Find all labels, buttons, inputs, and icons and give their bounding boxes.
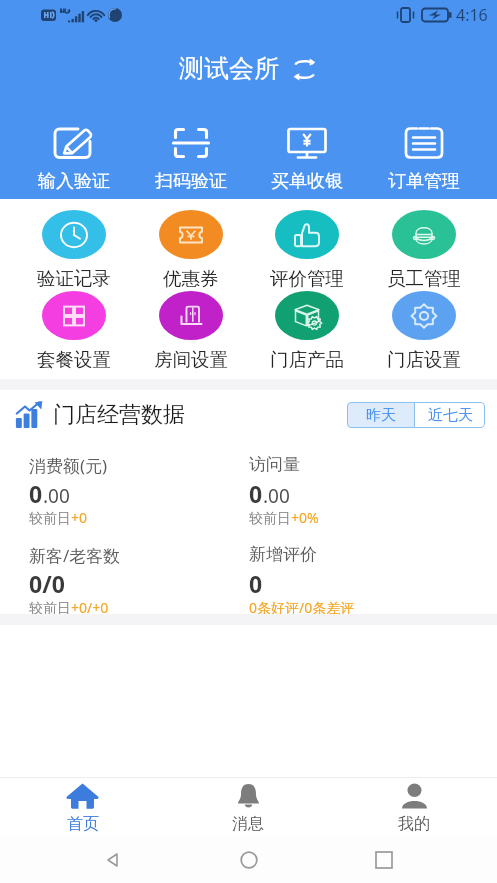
staticText: 访问量 [249,454,300,475]
button[interactable]: 优惠券 [148,210,233,290]
staticText: 优惠券 [163,267,219,290]
staticText: 4:16 [456,4,488,26]
button[interactable]: 门店产品 [264,291,349,371]
button[interactable]: 买单收银 [264,125,349,193]
staticText: 0 [249,568,263,599]
button[interactable]: Back [91,838,135,882]
staticText: 套餐设置 [37,348,111,371]
button[interactable]: 评价管理 [264,210,349,290]
staticText: 验证记录 [37,267,111,290]
staticText: 扫码验证 [155,170,227,193]
staticText: 首页 [67,814,99,834]
staticText: 测试会所 [179,53,279,84]
staticText: 门店设置 [387,348,461,371]
button[interactable]: Recents [362,838,406,882]
button[interactable]: Refresh [290,55,318,83]
button[interactable]: Home [227,838,271,882]
staticText: 较前日+0 [29,508,88,527]
staticText: 较前日+0% [249,508,319,527]
staticText: 较前日+0/+0 [29,598,109,617]
staticText: 门店经营数据 [53,401,185,429]
staticText: 房间设置 [154,348,228,371]
button[interactable]: 首页 [0,778,165,837]
button[interactable]: 昨天 [347,402,414,428]
button[interactable]: 套餐设置 [31,291,116,371]
staticText: 新增评价 [249,544,317,565]
button[interactable]: 我的 [331,778,497,837]
staticText: 输入验证 [38,170,110,193]
staticText: 消息 [232,814,264,834]
staticText: 昨天 [366,406,396,425]
staticText: 0/0 [29,568,65,599]
staticText: 门店产品 [270,348,344,371]
staticText: 我的 [398,814,430,834]
staticText: .00 [43,483,70,509]
staticText: 0 [29,478,43,509]
button[interactable]: 近七天 [415,402,485,428]
button[interactable]: 消息 [165,778,331,837]
staticText: 员工管理 [387,267,461,290]
staticText: 消费额(元) [29,454,108,477]
button[interactable]: 扫码验证 [148,125,233,193]
button[interactable]: 订单管理 [381,125,466,193]
staticText: 评价管理 [270,267,344,290]
button[interactable]: 房间设置 [148,291,233,371]
button[interactable]: 员工管理 [381,210,466,290]
staticText: 订单管理 [388,170,460,193]
button[interactable]: 门店设置 [381,291,466,371]
staticText: 近七天 [428,406,473,425]
staticText: 新客/老客数 [29,544,121,567]
staticText: 0 [249,478,263,509]
staticText: 买单收银 [271,170,343,193]
staticText: .00 [263,483,290,509]
button[interactable]: 输入验证 [31,125,116,193]
staticText: 0条好评/0条差评 [249,598,355,617]
button[interactable]: 验证记录 [31,210,116,290]
